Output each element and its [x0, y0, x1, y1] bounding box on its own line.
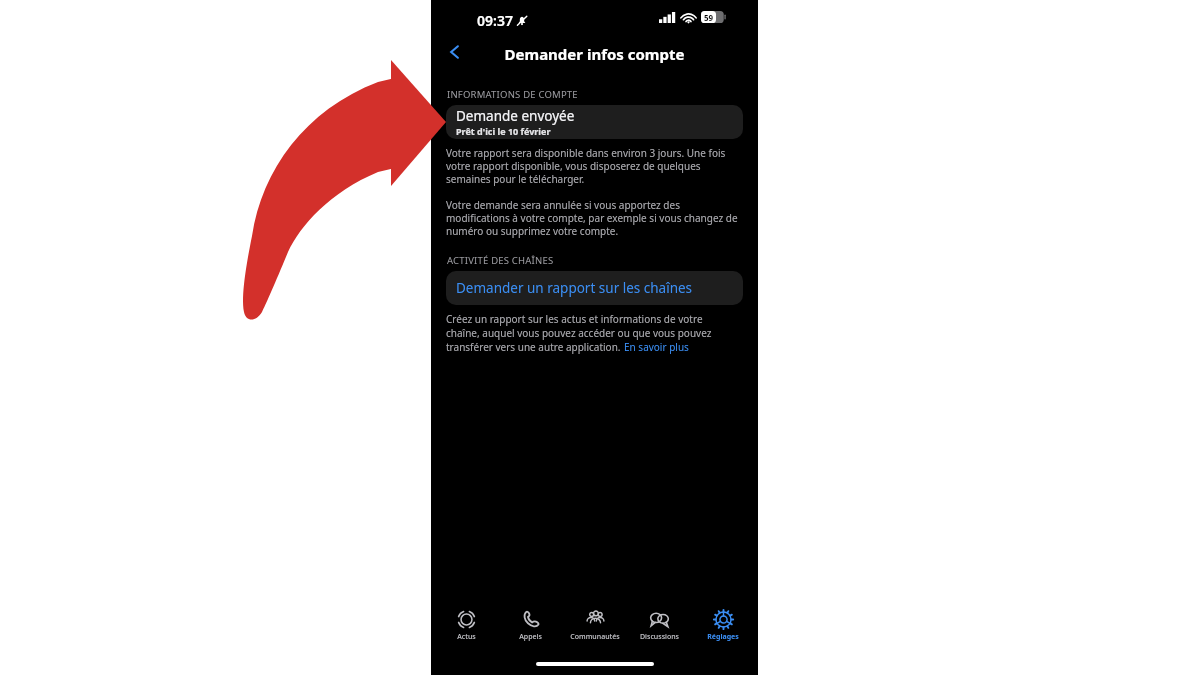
staticText: 09:37: [477, 11, 513, 30]
staticText: Appels: [519, 632, 542, 642]
staticText: Créez un rapport sur les actus et inform…: [446, 312, 703, 326]
staticText: En savoir plus: [624, 340, 689, 354]
staticText: ACTIVITÉ DES CHAÎNES: [447, 254, 554, 267]
staticText: transférer vers une autre application.: [446, 340, 624, 354]
staticText: Réglages: [707, 632, 739, 642]
button[interactable]: Réglages: [694, 609, 752, 642]
button[interactable]: Communautés: [566, 609, 624, 642]
staticText: Communautés: [570, 632, 620, 642]
button[interactable]: Discussions: [630, 609, 688, 642]
staticText: Demander un rapport sur les chaînes: [456, 279, 693, 297]
staticText: Votre rapport sera disponible dans envir…: [446, 146, 743, 186]
staticText: Discussions: [640, 632, 679, 642]
button[interactable]: Back: [437, 36, 473, 68]
staticText: Demande envoyée: [456, 107, 575, 125]
staticText: Demander infos compte: [431, 44, 758, 64]
button[interactable]: En savoir plus: [624, 340, 689, 354]
button[interactable]: Appels: [501, 609, 559, 642]
staticText: INFORMATIONS DE COMPTE: [447, 88, 578, 101]
staticText: Votre demande sera annulée si vous appor…: [446, 198, 743, 238]
button[interactable]: Demande envoyée: [446, 105, 743, 139]
staticText: Actus: [457, 632, 476, 642]
staticText: Prêt d'ici le 10 février: [456, 125, 551, 137]
button[interactable]: Demander un rapport sur les chaînes: [446, 271, 743, 305]
staticText: chaîne, auquel vous pouvez accéder ou qu…: [446, 326, 712, 340]
button[interactable]: Actus: [437, 609, 495, 642]
staticText: 59: [704, 12, 714, 23]
